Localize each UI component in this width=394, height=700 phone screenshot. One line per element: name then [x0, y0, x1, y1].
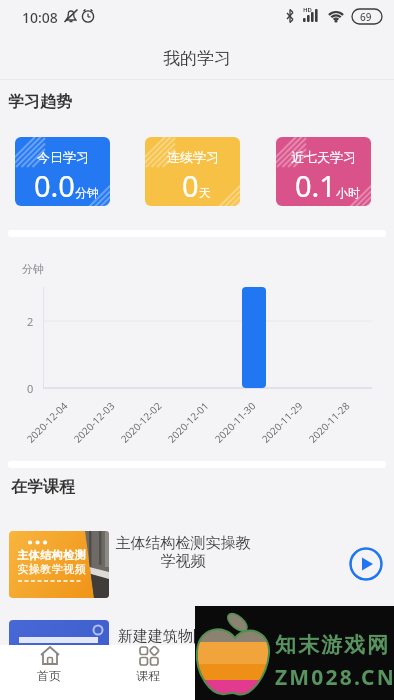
staticText: 新建建筑物防雷装置检	[118, 627, 268, 646]
staticText: 连续学习	[167, 149, 219, 165]
staticText: 2020-11-28	[305, 398, 352, 445]
staticText: 主体结构检测实操教 学视频	[108, 534, 258, 571]
staticText: 近七天学习	[291, 149, 356, 165]
staticText: 小时	[336, 185, 360, 200]
staticText: 2020-12-01	[164, 398, 211, 445]
staticText: 学习趋势	[8, 92, 72, 112]
staticText: 分钟	[22, 262, 44, 276]
staticText: 2020-11-30	[211, 398, 258, 445]
staticText: 天	[199, 185, 211, 200]
staticText: 实操教学视频	[17, 562, 86, 576]
button[interactable]: 首页	[19, 645, 79, 700]
button[interactable]: 主体结构检测实操教 学视频	[108, 534, 258, 571]
button[interactable]: 连续学习	[145, 137, 240, 206]
staticText: 0	[27, 381, 34, 396]
staticText: 2020-12-02	[117, 398, 164, 445]
staticText: ZM028.CN	[275, 663, 394, 692]
staticText: 0.0	[34, 166, 75, 205]
staticText: 我的学习	[163, 48, 231, 69]
staticText: 在学课程	[11, 477, 75, 497]
staticText: 69	[360, 10, 372, 24]
button[interactable]: 今日学习	[15, 137, 110, 206]
button[interactable]: 我的	[315, 645, 375, 700]
staticText: 2020-12-04	[23, 398, 70, 445]
button[interactable]	[9, 620, 109, 687]
staticText: 2020-11-29	[258, 398, 305, 445]
staticText: 知末游戏网	[274, 632, 389, 658]
staticText: 2	[27, 314, 34, 329]
staticText: 10:08	[22, 8, 58, 27]
staticText: 分钟	[75, 185, 99, 200]
staticText: 0	[182, 166, 199, 205]
button[interactable]: 课程	[118, 645, 178, 700]
staticText: 2020-12-03	[70, 398, 117, 445]
button[interactable]: 近七天学习	[276, 137, 371, 206]
button[interactable]	[349, 547, 383, 581]
staticText: 我的	[333, 668, 357, 683]
staticText: 今日学习	[37, 149, 89, 165]
staticText: 首页	[37, 668, 61, 683]
staticText: HD	[303, 6, 312, 14]
staticText: 题库	[234, 668, 258, 683]
button[interactable]: 题库	[216, 645, 276, 700]
staticText: 主体结构检测	[17, 548, 86, 562]
button[interactable]: 主体结构检测	[9, 531, 109, 598]
staticText: 课程	[136, 668, 160, 683]
staticText: 0.1	[295, 166, 336, 205]
